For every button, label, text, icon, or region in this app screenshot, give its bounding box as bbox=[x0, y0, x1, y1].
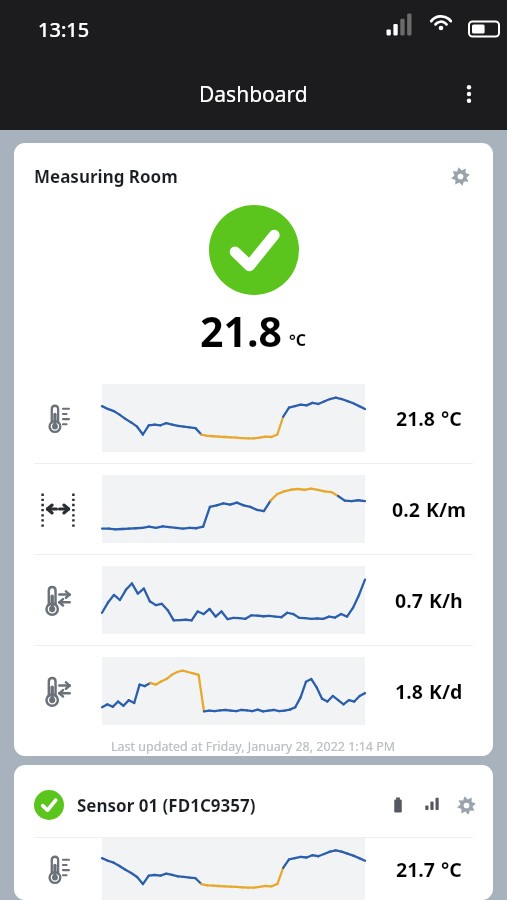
staticText: 1.8 bbox=[395, 678, 423, 705]
button[interactable]: 21.8 bbox=[14, 373, 493, 463]
button[interactable]: Sensor settings bbox=[449, 788, 483, 822]
staticText: Dashboard bbox=[199, 80, 308, 109]
staticText: °C bbox=[441, 856, 462, 883]
button[interactable]: Measuring Room bbox=[14, 143, 493, 756]
button[interactable]: Room settings bbox=[441, 159, 479, 193]
staticText: Last updated at Friday, January 28, 2022… bbox=[111, 738, 396, 755]
staticText: 13:15 bbox=[38, 16, 90, 43]
button[interactable]: More options bbox=[445, 70, 493, 118]
staticText: °C bbox=[441, 405, 462, 432]
button[interactable]: Signal strength bbox=[415, 788, 449, 822]
staticText: Measuring Room bbox=[34, 165, 178, 188]
staticText: 0.2 bbox=[392, 496, 420, 523]
staticText: K/m bbox=[426, 496, 467, 523]
button[interactable]: Sensor 01 (FD1C9357) bbox=[14, 765, 493, 900]
button[interactable]: 1.8 bbox=[14, 646, 493, 736]
button[interactable]: 21.7 bbox=[14, 838, 493, 900]
staticText: K/h bbox=[429, 587, 463, 614]
button[interactable]: Battery level bbox=[381, 788, 415, 822]
staticText: 21.7 bbox=[396, 856, 435, 883]
button[interactable]: 0.2 bbox=[14, 464, 493, 554]
staticText: Sensor 01 (FD1C9357) bbox=[77, 794, 256, 817]
staticText: °C bbox=[289, 329, 307, 351]
button[interactable]: 0.7 bbox=[14, 555, 493, 645]
staticText: 21.8 bbox=[396, 405, 435, 432]
staticText: K/d bbox=[429, 678, 463, 705]
staticText: 0.7 bbox=[395, 587, 423, 614]
staticText: 21.8 bbox=[200, 303, 282, 359]
